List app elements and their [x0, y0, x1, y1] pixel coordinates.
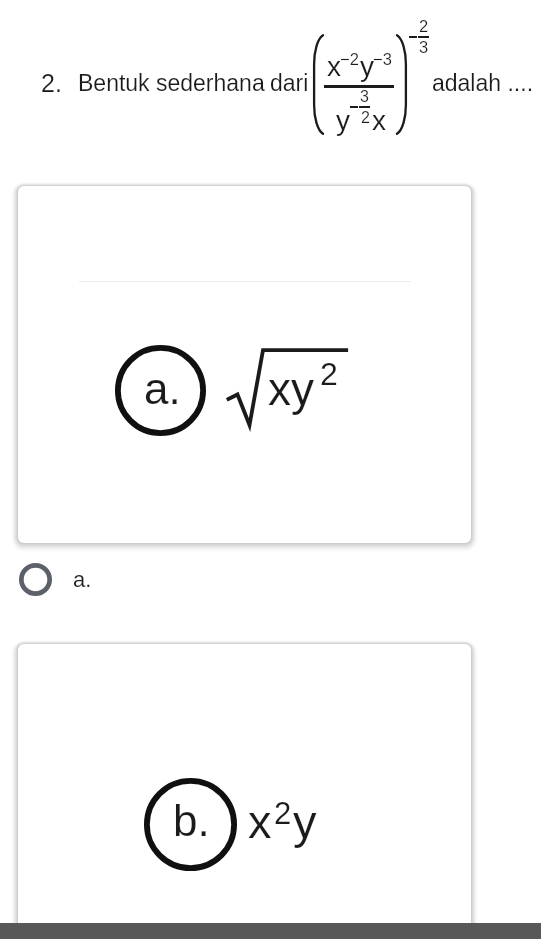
staticText: 2 — [361, 109, 370, 127]
staticText: x — [327, 51, 341, 82]
staticText: −3 — [373, 50, 392, 68]
staticText: b. — [173, 796, 210, 845]
button[interactable]: b. — [18, 644, 471, 934]
staticText: 2 — [419, 17, 429, 35]
staticText: 2 — [274, 796, 292, 831]
staticText: dari — [270, 70, 309, 96]
staticText: x — [372, 105, 386, 136]
staticText: a. — [144, 364, 181, 413]
staticText: Bentuk — [78, 70, 150, 96]
staticText: sederhana — [156, 70, 265, 96]
staticText: x — [248, 795, 272, 848]
staticText: 2. — [41, 69, 62, 97]
button[interactable] — [4, 556, 66, 603]
staticText: 3 — [360, 88, 369, 106]
staticText: −2 — [340, 50, 359, 68]
staticText: y — [293, 795, 317, 848]
staticText: y — [336, 105, 350, 136]
button[interactable]: a. — [18, 186, 471, 543]
staticText: adalah .... — [432, 70, 534, 96]
staticText: y — [360, 51, 374, 82]
staticText: a. — [73, 567, 92, 592]
staticText: xy — [268, 363, 314, 414]
staticText: 3 — [419, 38, 429, 56]
staticText: 2 — [320, 356, 338, 392]
